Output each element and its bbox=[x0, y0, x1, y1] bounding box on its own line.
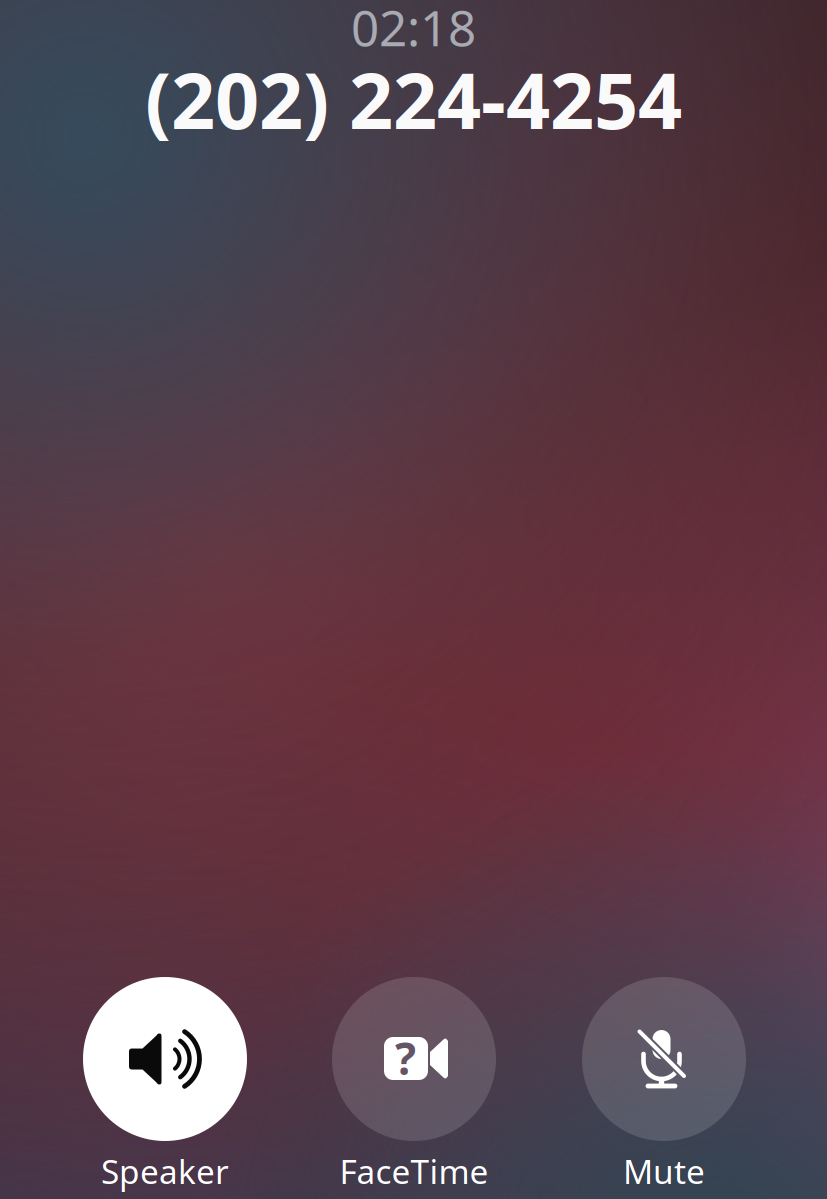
staticText: 02:18 bbox=[351, 0, 476, 60]
button[interactable]: Speaker bbox=[50, 977, 280, 1195]
staticText: (202) 224-4254 bbox=[145, 48, 682, 150]
staticText: FaceTime bbox=[339, 1149, 488, 1193]
staticText: Speaker bbox=[101, 1149, 229, 1193]
button[interactable]: FaceTime bbox=[299, 977, 529, 1195]
staticText: Mute bbox=[623, 1149, 705, 1193]
button[interactable]: Mute bbox=[549, 977, 779, 1195]
